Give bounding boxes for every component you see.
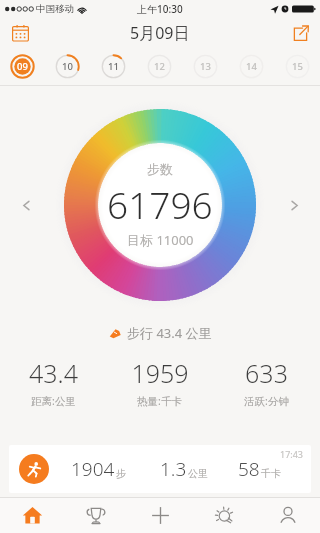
- button[interactable]: 09: [0, 48, 45, 85]
- staticText: 步: [116, 467, 126, 480]
- button[interactable]: Calendar: [6, 19, 34, 47]
- staticText: 上午10:30: [137, 2, 183, 16]
- staticText: 17:43: [280, 448, 304, 460]
- button[interactable]: 12: [136, 48, 182, 85]
- staticText: 目标 11000: [127, 231, 194, 249]
- staticText: 千卡: [261, 467, 281, 480]
- staticText: 中国移动: [36, 3, 74, 15]
- staticText: 15: [292, 60, 303, 73]
- button[interactable]: 10: [45, 48, 90, 85]
- staticText: 10: [62, 60, 73, 73]
- button[interactable]: 633: [213, 356, 320, 408]
- button[interactable]: 14: [228, 48, 274, 85]
- button[interactable]: Home: [0, 498, 64, 533]
- button[interactable]: 43.4: [0, 356, 106, 408]
- staticText: 43.4: [29, 356, 78, 390]
- button[interactable]: Discover: [192, 498, 256, 533]
- staticText: 12: [154, 60, 165, 73]
- staticText: 11: [108, 60, 119, 73]
- staticText: 1959: [131, 356, 189, 390]
- button[interactable]: 步数: [62, 107, 258, 303]
- button[interactable]: Add: [128, 498, 192, 533]
- staticText: 步数: [147, 161, 173, 177]
- staticText: 633: [245, 356, 288, 390]
- button[interactable]: Share: [286, 19, 314, 47]
- staticText: 14: [246, 60, 257, 73]
- staticText: 09: [17, 60, 28, 73]
- staticText: 13: [200, 60, 211, 73]
- staticText: 活跃:分钟: [244, 394, 289, 408]
- button[interactable]: 15: [274, 48, 320, 85]
- staticText: 61796: [107, 179, 213, 229]
- button[interactable]: 13: [182, 48, 228, 85]
- button[interactable]: Previous day: [12, 191, 40, 219]
- button[interactable]: 1959: [106, 356, 213, 408]
- button[interactable]: Next day: [280, 191, 308, 219]
- staticText: 公里: [188, 467, 208, 480]
- button[interactable]: Profile: [256, 498, 320, 533]
- button[interactable]: 17:43: [9, 445, 311, 493]
- button[interactable]: Achievements: [64, 498, 128, 533]
- staticText: 热量:千卡: [137, 394, 182, 408]
- staticText: 步行 43.4 公里: [127, 324, 212, 342]
- button[interactable]: 步行 43.4 公里: [0, 324, 320, 342]
- staticText: 1.3: [160, 456, 187, 482]
- staticText: 5月09日: [130, 22, 190, 44]
- staticText: 1904: [71, 456, 115, 482]
- staticText: 58: [238, 456, 260, 482]
- button[interactable]: 11: [90, 48, 136, 85]
- staticText: 距离:公里: [31, 394, 76, 408]
